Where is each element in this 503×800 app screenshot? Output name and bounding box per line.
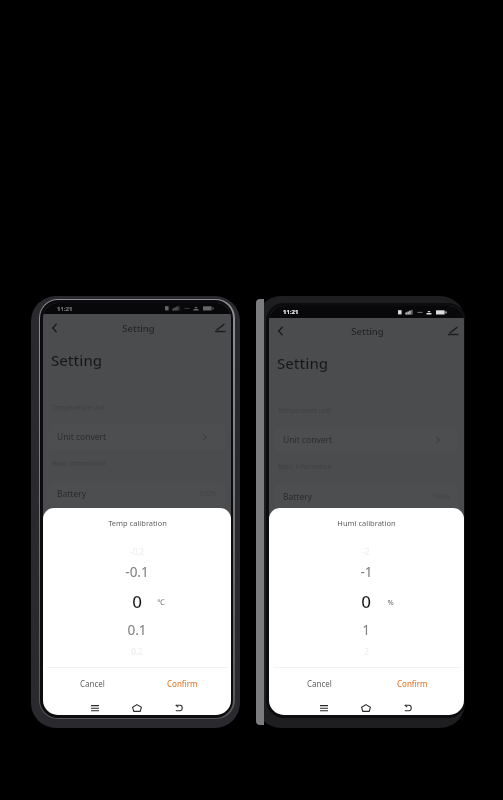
button[interactable]: Back: [45, 317, 63, 339]
staticText: Setting: [122, 322, 155, 335]
staticText: -0.1: [125, 563, 149, 581]
button[interactable]: Cancel: [273, 668, 366, 698]
button[interactable]: Back: [271, 320, 289, 342]
staticText: 0: [132, 590, 142, 612]
staticText: 0.1: [127, 621, 147, 639]
staticText: Temp calibration: [108, 518, 167, 528]
staticText: ℃: [157, 597, 165, 607]
staticText: Setting: [351, 325, 384, 338]
staticText: Temperature unit: [278, 406, 332, 415]
button[interactable]: Cancel: [47, 668, 137, 698]
staticText: -0.2: [130, 546, 144, 557]
button[interactable]: Confirm: [366, 668, 459, 698]
staticText: Basic information: [278, 462, 332, 471]
staticText: Temperature unit: [52, 403, 106, 412]
staticText: Basic information: [52, 459, 106, 468]
staticText: Cancel: [307, 678, 332, 689]
button[interactable]: Setting: [51, 350, 103, 370]
button[interactable]: Unit convert: [274, 427, 459, 453]
staticText: 0: [361, 590, 371, 612]
button[interactable]: Battery: [48, 481, 226, 507]
staticText: 2: [364, 646, 369, 657]
button[interactable]: Confirm: [137, 668, 227, 698]
button[interactable]: Recents: [315, 699, 333, 715]
button[interactable]: Recents: [86, 699, 104, 715]
staticText: Battery: [283, 491, 313, 503]
button[interactable]: Home: [128, 699, 146, 715]
staticText: 1: [362, 621, 370, 639]
staticText: -2: [362, 546, 370, 557]
staticText: 0.2: [131, 646, 143, 657]
button[interactable]: Setting: [277, 353, 329, 373]
button[interactable]: Edit: [443, 320, 463, 342]
staticText: Battery: [57, 488, 87, 500]
staticText: %: [387, 597, 394, 607]
staticText: Unit convert: [57, 431, 107, 443]
staticText: Confirm: [397, 678, 428, 689]
staticText: 11:21: [283, 308, 299, 316]
staticText: Confirm: [167, 678, 198, 689]
button[interactable]: Back: [170, 699, 188, 715]
staticText: 11:21: [57, 305, 73, 313]
button[interactable]: Back: [399, 699, 417, 715]
button[interactable]: Unit convert: [48, 424, 226, 450]
staticText: Unit convert: [283, 434, 333, 446]
staticText: Cancel: [80, 678, 105, 689]
button[interactable]: Battery: [274, 484, 459, 510]
staticText: Humi calibration: [337, 518, 396, 528]
button[interactable]: Home: [357, 699, 375, 715]
staticText: -1: [360, 563, 373, 581]
button[interactable]: Edit: [210, 317, 230, 339]
